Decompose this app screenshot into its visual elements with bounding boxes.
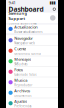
staticText: Reproductor	[14, 83, 32, 87]
staticText: Mensajes	[14, 56, 31, 62]
staticText: Navegador web	[14, 41, 35, 45]
staticText: Samsung Support	[8, 10, 27, 21]
staticText: Documentos	[14, 94, 31, 97]
button[interactable]: Search	[53, 8, 55, 10]
staticText: Musica	[14, 77, 27, 83]
button[interactable]: Archivos	[6, 88, 58, 98]
staticText: Fotos	[14, 67, 23, 72]
staticText: Cuenta, ajustes y mas	[8, 22, 36, 25]
staticText: 9:41	[8, 0, 15, 5]
staticText: Archivos	[14, 88, 30, 93]
button[interactable]: Fotos	[6, 67, 58, 77]
staticText: Galeria de fotos	[14, 73, 36, 76]
staticText: Navegador	[14, 35, 33, 41]
button[interactable]: Mensajes	[6, 56, 58, 67]
staticText: Preferencias	[14, 104, 31, 108]
staticText: Buscar actualizaciones	[14, 30, 42, 34]
button[interactable]: Cuenta	[6, 46, 58, 56]
button[interactable]: Ajustes	[6, 98, 58, 108]
staticText: Cuenta	[14, 46, 26, 51]
staticText: Gestiona tu cuenta	[14, 52, 40, 55]
button[interactable]: Actualizacion	[6, 25, 58, 33]
button[interactable]: Samsung Support	[6, 13, 58, 23]
staticText: Dashboard	[8, 5, 43, 14]
staticText: ▮▮▮	[49, 0, 55, 5]
staticText: Actualizacion	[14, 24, 37, 29]
button[interactable]: Musica	[6, 77, 58, 88]
staticText: Ajustes	[14, 98, 27, 104]
staticText: SMS y chats	[14, 62, 27, 66]
button[interactable]: Navegador	[6, 35, 58, 46]
